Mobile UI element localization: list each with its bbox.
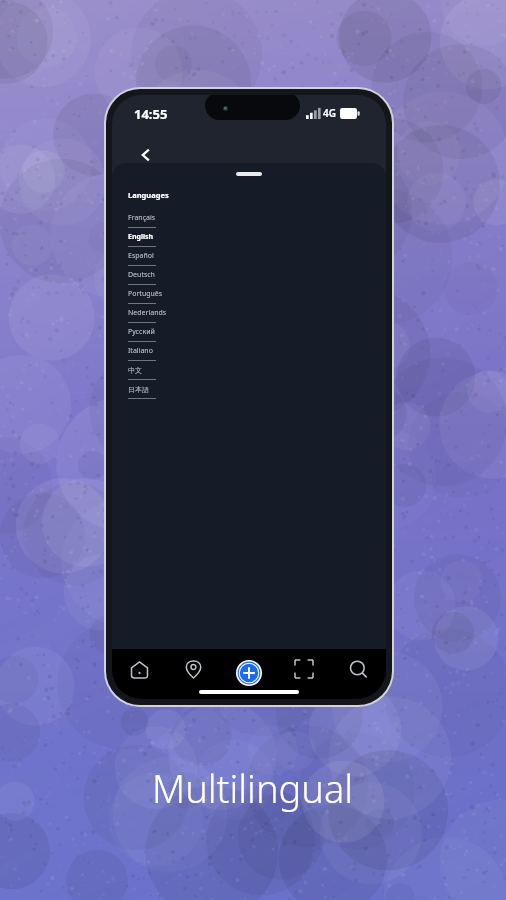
button[interactable]: Scan [276,653,331,699]
staticText: Deutsch [128,270,155,280]
button[interactable]: Français [128,209,218,228]
staticText: Nederlands [128,308,167,318]
staticText: Italiano [128,346,153,356]
button[interactable]: Português [128,285,218,304]
staticText: Français [128,213,156,223]
button[interactable]: Search [331,653,386,699]
button[interactable]: Deutsch [128,266,218,285]
staticText: 中文 [128,366,142,375]
staticText: Languages [128,190,169,200]
button[interactable]: English [128,228,218,247]
button[interactable]: 中文 [128,361,218,380]
button[interactable]: Italiano [128,342,218,361]
staticText: 日本語 [128,385,149,394]
staticText: 14:55 [134,105,168,123]
button[interactable]: Add [221,653,276,699]
button[interactable]: Español [128,247,218,266]
button[interactable]: Nederlands [128,304,218,323]
button[interactable]: Back [126,135,166,175]
staticText: Português [128,289,163,299]
staticText: Español [128,251,154,261]
button[interactable]: Русский [128,323,218,342]
button[interactable]: Places [166,653,221,699]
button[interactable]: 日本語 [128,380,218,399]
staticText: 4G [323,106,336,120]
button[interactable]: Home [112,653,166,699]
staticText: English [128,232,154,242]
staticText: Multilingual [152,762,354,814]
staticText: Русский [128,327,155,337]
